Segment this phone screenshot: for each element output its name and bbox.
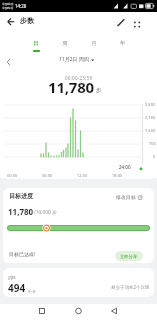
staticText: 0 xyxy=(153,154,156,159)
button[interactable]: 周 xyxy=(56,37,74,53)
staticText: 年 xyxy=(120,40,126,47)
staticText: 修改目标 xyxy=(116,194,136,200)
staticText: 目标已达成! xyxy=(9,251,36,258)
staticText: 11,780 xyxy=(48,77,94,97)
button[interactable] xyxy=(0,12,18,30)
staticText: 06:00 xyxy=(42,173,53,178)
staticText: 相当于消耗2个汉堡 xyxy=(111,284,150,290)
button[interactable]: 修改目标 xyxy=(116,194,143,200)
staticText: 12:00 xyxy=(77,173,88,178)
staticText: 494 xyxy=(8,281,26,295)
staticText: 00:00-23:59 xyxy=(65,75,93,81)
staticText: 11,780 xyxy=(8,206,34,217)
staticText: 700 xyxy=(149,141,156,146)
staticText: 千卡 xyxy=(28,289,36,294)
button[interactable] xyxy=(113,14,128,29)
button[interactable]: 年 xyxy=(114,37,132,53)
staticText: 14:26 xyxy=(15,3,27,9)
button[interactable] xyxy=(3,55,15,67)
staticText: 立即分享 xyxy=(120,254,138,259)
staticText: 18:00 xyxy=(112,173,123,178)
staticText: /10,000 步 xyxy=(34,209,57,216)
staticText: 1,400 xyxy=(145,128,156,133)
button[interactable] xyxy=(131,14,146,29)
staticText: 步 xyxy=(96,87,102,94)
button[interactable]: 日 xyxy=(27,37,45,53)
staticText: 2,100 xyxy=(145,115,156,120)
staticText: 周 xyxy=(62,40,68,47)
button[interactable] xyxy=(68,304,88,320)
staticText: 00:00 xyxy=(7,173,18,178)
button[interactable]: 立即分享 xyxy=(115,251,143,261)
button[interactable]: 11月2日 周四 xyxy=(59,56,94,63)
button[interactable]: 月 xyxy=(85,37,103,53)
staticText: 11月2日 周四 xyxy=(59,56,89,63)
staticText: 消耗 xyxy=(8,275,16,280)
staticText: 2,800 xyxy=(145,102,156,107)
staticText: 步数 xyxy=(20,16,34,25)
button[interactable] xyxy=(104,304,124,320)
staticText: 目标进度 xyxy=(9,192,33,200)
staticText: 24:00 xyxy=(119,164,131,170)
staticText: 中国移动 xyxy=(2,2,14,6)
button[interactable]: 消耗 xyxy=(3,268,154,297)
staticText: 日 xyxy=(33,40,39,47)
button[interactable] xyxy=(32,304,52,320)
staticText: 中国电信 xyxy=(2,6,14,10)
staticText: 月 xyxy=(91,40,97,47)
